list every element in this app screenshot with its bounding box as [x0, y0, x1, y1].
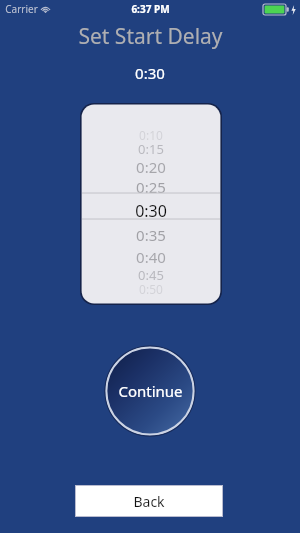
staticText: Set Start Delay: [78, 22, 223, 50]
button[interactable]: 0:40: [80, 247, 222, 267]
staticText: 0:30: [135, 63, 165, 83]
button[interactable]: 0:45: [80, 265, 222, 285]
staticText: 0:20: [136, 157, 166, 177]
button[interactable]: 0:20: [80, 157, 222, 177]
other: Battery charging: [263, 4, 289, 15]
staticText: 0:25: [136, 177, 166, 197]
button[interactable]: Back: [76, 486, 222, 516]
button[interactable]: 0:25: [80, 177, 222, 197]
button[interactable]: 0:15: [80, 139, 222, 159]
staticText: Continue: [118, 381, 183, 401]
button[interactable]: 0:50: [80, 279, 222, 299]
staticText: 6:37 PM: [131, 2, 170, 16]
staticText: 0:10: [139, 127, 163, 143]
staticText: 0:15: [138, 140, 164, 158]
staticText: 0:45: [138, 266, 164, 284]
staticText: 0:35: [136, 225, 166, 245]
staticText: 0:30: [135, 200, 167, 222]
staticText: 0:50: [139, 281, 163, 297]
button[interactable]: 0:35: [80, 225, 222, 245]
staticText: 0:40: [136, 247, 166, 267]
staticText: Carrier: [5, 2, 38, 16]
button[interactable]: 0:10: [80, 125, 222, 145]
staticText: Back: [133, 492, 165, 511]
button[interactable]: 0:30: [80, 199, 222, 223]
button[interactable]: Continue: [104, 345, 196, 437]
